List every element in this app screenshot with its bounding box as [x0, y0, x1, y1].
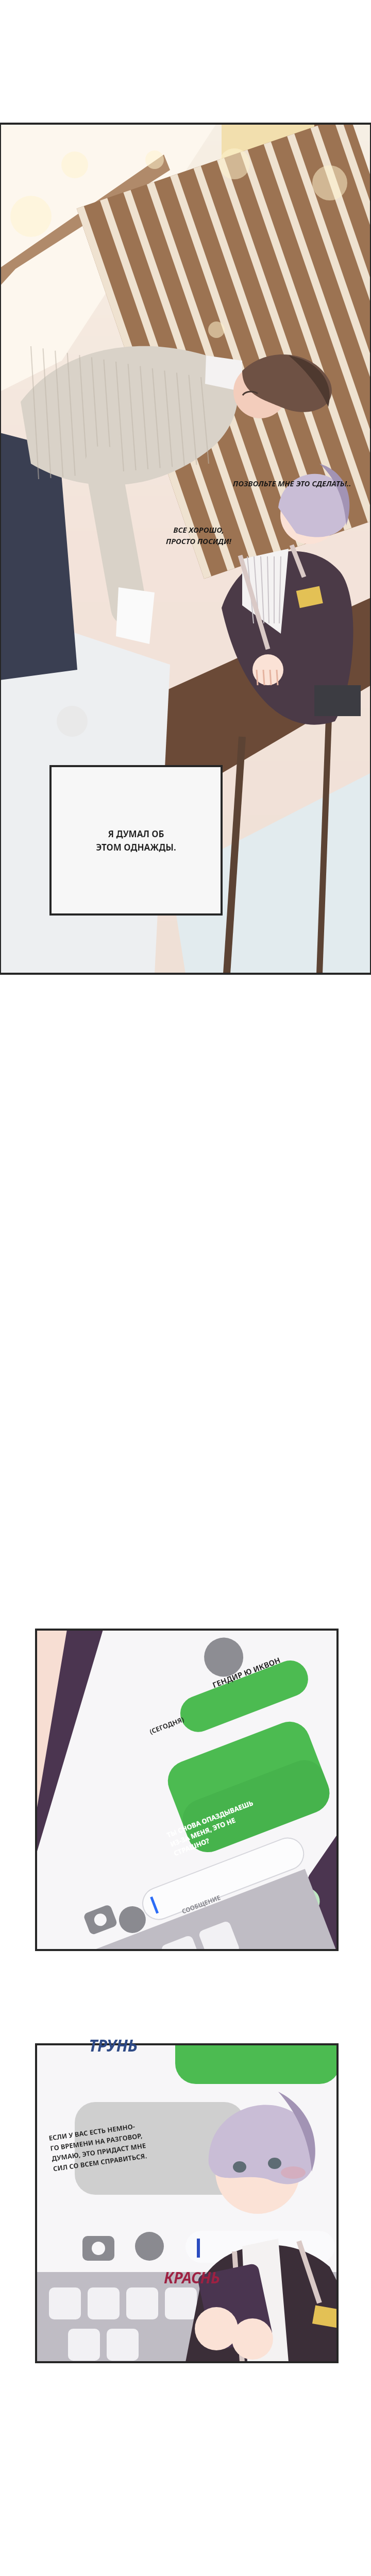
button[interactable]: ПОЗВОЛЬТЕ МНЕ ЭТО СДЕЛАТЬ!..	[233, 478, 351, 488]
staticText: ГЕНДИР Ю ИКВОН	[211, 1655, 282, 1690]
staticText: КРАСНЬ	[164, 2267, 220, 2288]
staticText: ВСЕ ХОРОШО, ПРОСТО ПОСИДИ!	[166, 524, 231, 547]
staticText: ТРУНЬ	[89, 2034, 138, 2057]
staticText: ТЫ СНОВА ОПАЗДЫВАЕШЬ ИЗ-ЗА МЕНЯ, ЭТО НЕ …	[165, 1798, 262, 1858]
staticText: ЕСЛИ У ВАС ЕСТЬ НЕМНО- ГО ВРЕМЕНИ НА РАЗ…	[48, 2120, 148, 2173]
staticText: ПОЗВОЛЬТЕ МНЕ ЭТО СДЕЛАТЬ!..	[233, 478, 351, 488]
staticText: (СЕГОДНЯ)	[148, 1715, 185, 1736]
staticText: СООБЩЕНИЕ	[180, 1893, 222, 1915]
staticText: Я ДУМАЛ ОБ ЭТОМ ОДНАЖДЫ.	[96, 828, 176, 853]
button[interactable]: Я ДУМАЛ ОБ ЭТОМ ОДНАЖДЫ.	[50, 766, 222, 914]
